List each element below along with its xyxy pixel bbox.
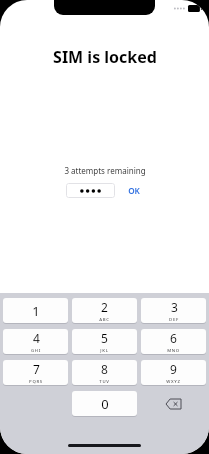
staticText: 3 [171,299,178,315]
button[interactable]: 6 [141,329,206,354]
staticText: JKL [100,347,109,353]
staticText: 8 [101,361,108,377]
button[interactable]: 2 [72,298,137,323]
button[interactable]: 1 [3,298,68,323]
staticText: 5 [101,330,108,346]
staticText: ABC [99,316,110,322]
button[interactable]: 4 [3,329,68,354]
staticText: 7 [33,361,40,377]
button[interactable]: 9 [141,360,206,385]
button[interactable]: 0 [72,391,137,416]
staticText: DEF [169,316,179,322]
staticText: MNO [167,347,180,353]
staticText: TUV [99,378,110,384]
staticText: OK [128,185,140,196]
staticText: 9 [170,361,177,377]
staticText: PQRS [29,378,43,384]
staticText: SIM is locked [53,46,157,68]
button[interactable]: OK [125,183,143,198]
staticText: 6 [170,330,177,346]
staticText: 1 [32,302,40,320]
staticText: GHI [31,347,41,353]
staticText: 2 [101,299,108,315]
staticText: 0 [101,395,109,413]
staticText: WXYZ [166,378,181,384]
staticText: 4 [33,330,40,346]
staticText: 3 attempts remaining [64,165,146,176]
button[interactable]: 3 [141,298,206,323]
button[interactable]: Delete [141,391,206,417]
button[interactable]: PIN entry field [66,183,115,198]
button[interactable]: 8 [72,360,137,385]
button[interactable]: 5 [72,329,137,354]
button[interactable]: 7 [3,360,68,385]
